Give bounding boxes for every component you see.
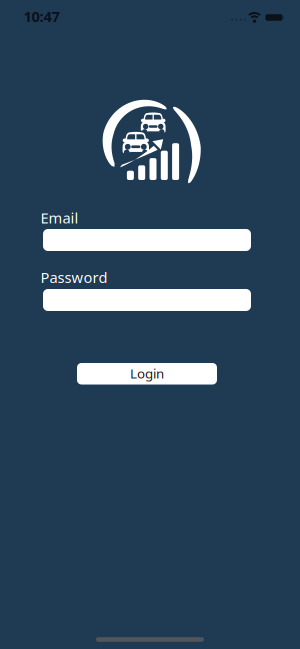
button[interactable]: Password [43, 289, 251, 311]
button[interactable]: Email [43, 229, 251, 251]
button[interactable]: Login [77, 363, 217, 384]
staticText: Login [130, 364, 164, 382]
staticText: 10:47 [23, 6, 59, 26]
staticText: Email [40, 208, 78, 227]
staticText: Password [40, 267, 107, 287]
